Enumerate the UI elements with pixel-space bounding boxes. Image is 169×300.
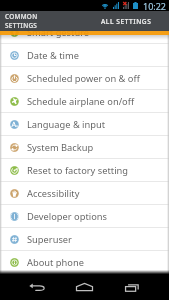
staticText: About phone [27, 256, 84, 269]
button[interactable]: Superuser [0, 228, 169, 250]
staticText: Accessibility [27, 187, 80, 200]
button[interactable]: Developer options [0, 205, 169, 227]
button[interactable]: Language & input [0, 113, 169, 135]
button[interactable]: Date & time [0, 44, 169, 66]
staticText: 10:22 [143, 0, 167, 11]
button[interactable]: COMMON [0, 11, 84, 31]
button[interactable]: Smart gesture [0, 21, 169, 43]
button[interactable]: Recent apps [108, 274, 155, 300]
button[interactable]: Back [14, 274, 61, 300]
button[interactable]: Reset to factory setting [0, 159, 169, 181]
staticText: Developer options [27, 210, 107, 223]
staticText: Date & time [27, 49, 79, 62]
button[interactable]: Home [61, 274, 108, 300]
staticText: ALL SETTINGS [101, 17, 152, 26]
button[interactable]: Scheduled power on & off [0, 67, 169, 89]
button[interactable]: Accessibility [0, 182, 169, 204]
button[interactable]: About phone [0, 251, 169, 273]
staticText: Language & input [27, 118, 106, 131]
staticText: SETTINGS [5, 21, 38, 30]
staticText: Reset to factory setting [27, 164, 129, 177]
button[interactable]: System Backup [0, 136, 169, 158]
staticText: Schedule airplane on/off [27, 95, 135, 108]
staticText: Smart gesture [27, 26, 90, 39]
staticText: COMMON [5, 12, 38, 21]
staticText: Scheduled power on & off [27, 72, 140, 85]
button[interactable]: Schedule airplane on/off [0, 90, 169, 112]
button[interactable]: ALL SETTINGS [84, 11, 169, 31]
staticText: Superuser [27, 233, 72, 246]
staticText: System Backup [27, 141, 94, 154]
